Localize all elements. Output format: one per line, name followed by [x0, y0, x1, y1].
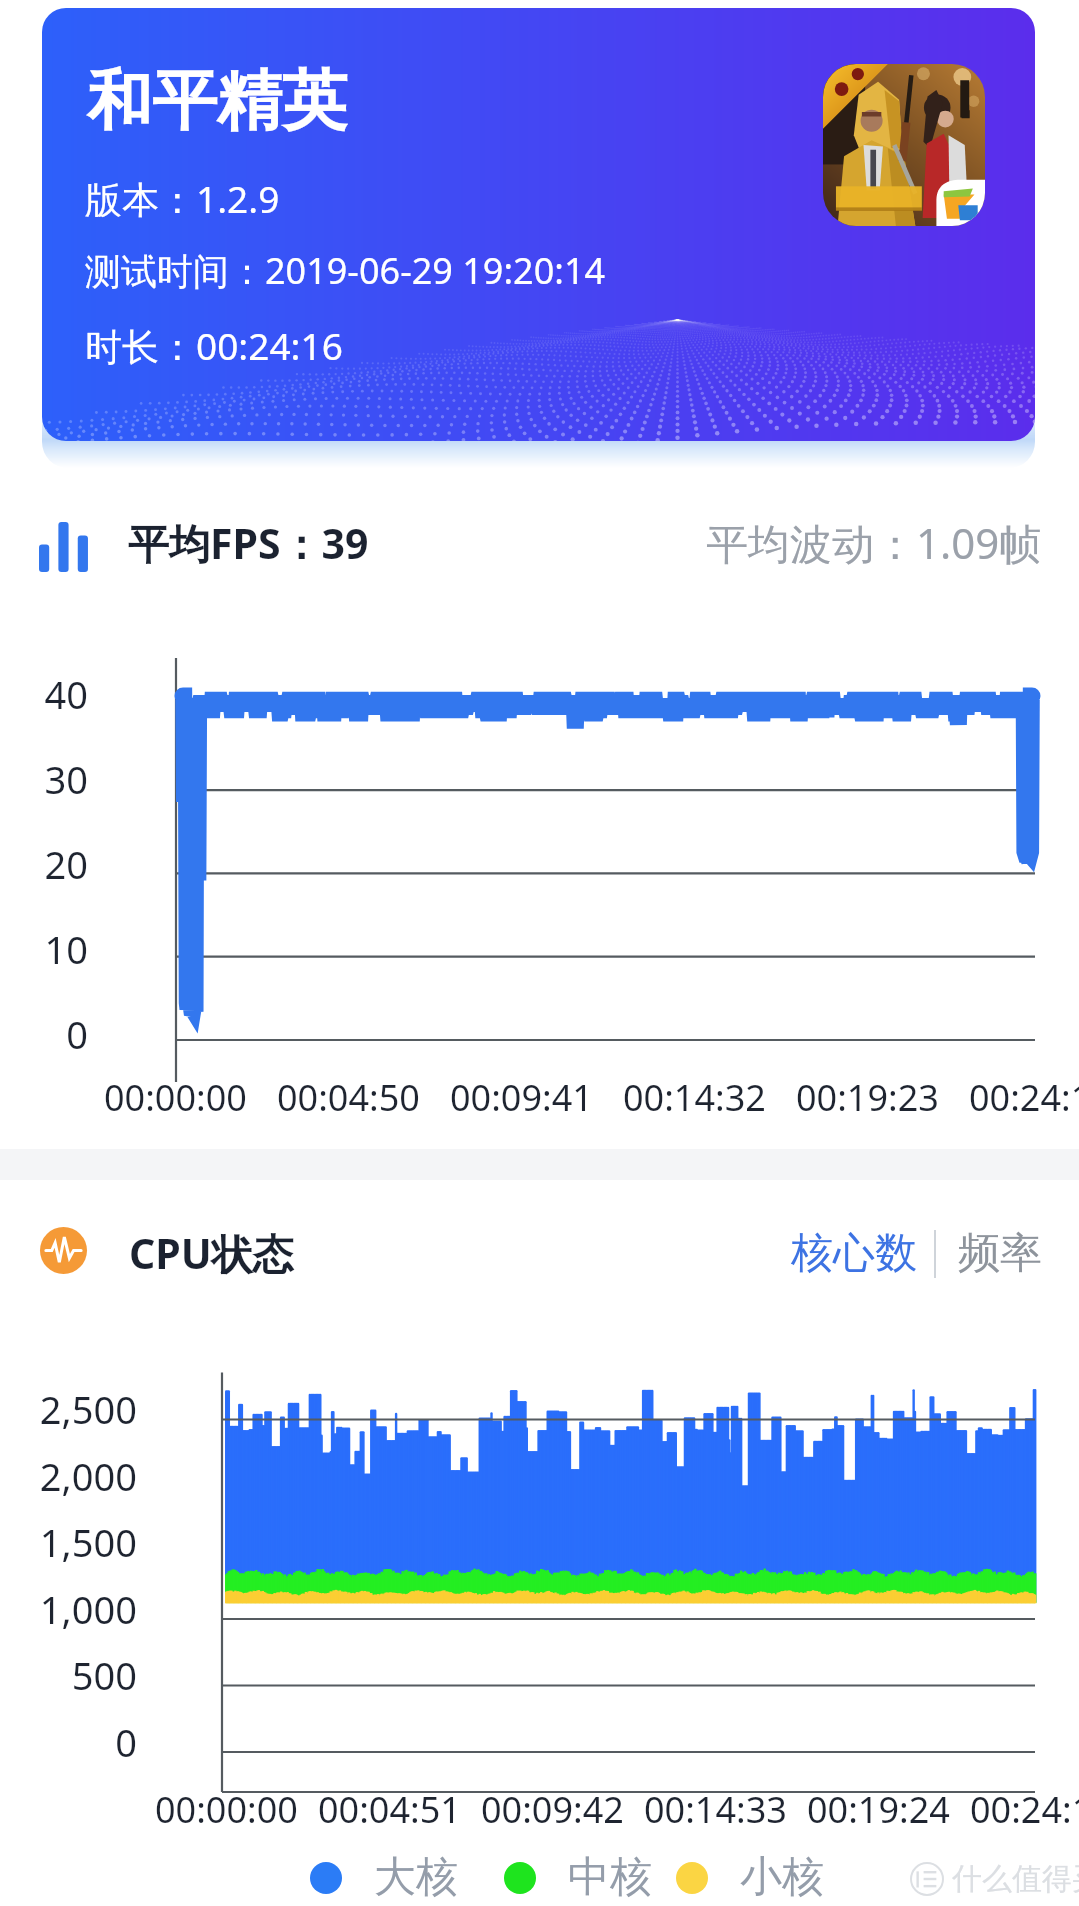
staticText: 00:04:50 — [277, 1073, 420, 1122]
staticText: 频率 — [958, 1227, 1042, 1280]
staticText: 00:00:00 — [155, 1785, 298, 1834]
staticText: 1,500 — [0, 1516, 137, 1568]
staticText: 1,000 — [0, 1583, 137, 1635]
staticText: 2,500 — [0, 1383, 137, 1435]
other: CPU status — [40, 1227, 87, 1274]
staticText: 20 — [0, 838, 88, 890]
staticText: 平均波动：1.09帧 — [706, 514, 1042, 571]
staticText: 小核 — [740, 1851, 824, 1904]
button[interactable]: 频率 — [950, 1221, 1050, 1286]
staticText: CPU状态 — [129, 1225, 294, 1281]
staticText: 00:09:41 — [450, 1073, 593, 1122]
button[interactable]: 核心数 — [783, 1221, 925, 1286]
staticText: 大核 — [374, 1851, 458, 1904]
button[interactable]: 小核 — [676, 1851, 824, 1904]
staticText: 00:04:51 — [318, 1785, 461, 1834]
staticText: 10 — [0, 923, 88, 975]
staticText: 500 — [0, 1649, 137, 1701]
button[interactable]: 和平精英 test summary — [42, 8, 1035, 441]
staticText: 0 — [0, 1008, 88, 1060]
staticText: 0 — [0, 1716, 137, 1768]
staticText: 00:24:1 — [970, 1785, 1079, 1834]
staticText: 00:19:23 — [796, 1073, 939, 1122]
staticText: 核心数 — [791, 1227, 917, 1280]
staticText: 40 — [0, 668, 88, 720]
staticText: 00:14:33 — [644, 1785, 787, 1834]
staticText: 和平精英 — [87, 60, 347, 142]
staticText: 00:09:42 — [481, 1785, 624, 1834]
other: FPS chart — [39, 520, 90, 572]
staticText: 2,000 — [0, 1450, 137, 1502]
staticText: 00:14:32 — [623, 1073, 766, 1122]
staticText: 测试时间：2019-06-29 19:20:14 — [85, 246, 606, 295]
staticText: 什么值得买 — [952, 1860, 1079, 1898]
staticText: 00:24:1 — [969, 1073, 1079, 1122]
staticText: 00:19:24 — [807, 1785, 950, 1834]
button[interactable]: 中核 — [504, 1851, 652, 1904]
staticText: 时长：00:24:16 — [85, 320, 343, 371]
staticText: 版本：1.2.9 — [85, 173, 280, 224]
staticText: 30 — [0, 753, 88, 805]
staticText: 00:00:00 — [104, 1073, 247, 1122]
staticText: 平均FPS：39 — [128, 515, 369, 571]
staticText: 中核 — [568, 1851, 652, 1904]
button[interactable]: 大核 — [310, 1851, 458, 1904]
